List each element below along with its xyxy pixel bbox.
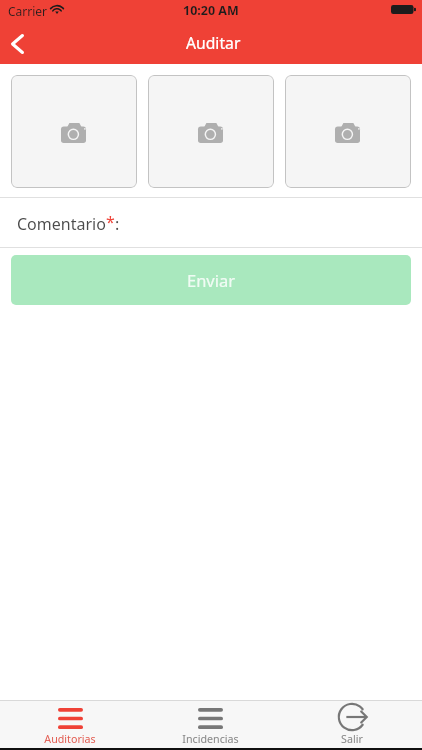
- button[interactable]: Incidencias: [140, 701, 281, 748]
- button[interactable]: Take photo: [148, 75, 274, 188]
- staticText: :: [115, 213, 120, 235]
- staticText: Comentario: [17, 213, 106, 235]
- staticText: Salir: [341, 732, 363, 747]
- button[interactable]: Take photo: [11, 75, 137, 188]
- staticText: *: [106, 211, 115, 233]
- staticText: Auditorias: [44, 732, 96, 747]
- button[interactable]: Salir: [281, 701, 422, 748]
- button[interactable]: Take photo: [285, 75, 411, 188]
- button[interactable]: Comentario: [0, 198, 422, 247]
- button[interactable]: Back: [0, 24, 42, 64]
- other: Salir: [338, 703, 366, 731]
- staticText: Auditar: [186, 32, 241, 53]
- staticText: Carrier: [8, 3, 48, 19]
- button[interactable]: Auditorias: [0, 701, 140, 748]
- button[interactable]: Enviar: [11, 255, 411, 305]
- staticText: Enviar: [187, 269, 236, 291]
- staticText: 10:20 AM: [183, 2, 239, 19]
- staticText: Incidencias: [182, 732, 239, 747]
